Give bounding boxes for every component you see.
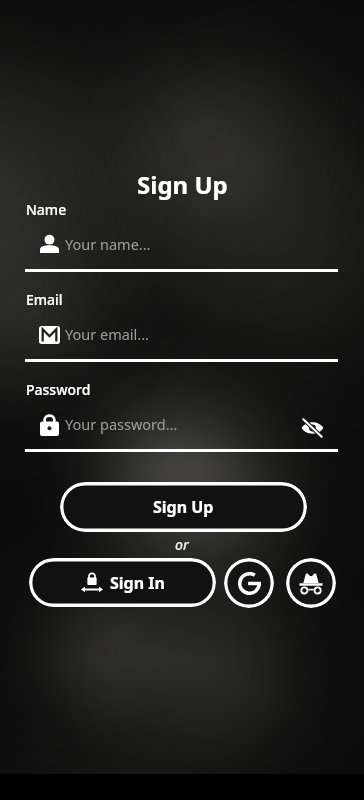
staticText: Sign Up: [137, 168, 228, 201]
button[interactable]: Show password: [292, 408, 332, 448]
staticText: Your password...: [65, 414, 178, 434]
staticText: Name: [26, 200, 67, 219]
staticText: Sign Up: [153, 496, 214, 518]
staticText: or: [175, 535, 189, 554]
staticText: Sign In: [110, 572, 165, 594]
staticText: Email: [26, 290, 63, 309]
button[interactable]: Continue as guest: [286, 558, 336, 608]
button[interactable]: Sign Up: [60, 482, 307, 532]
staticText: Your email...: [65, 324, 149, 344]
staticText: Password: [26, 380, 91, 399]
button[interactable]: Sign in with Google: [224, 558, 274, 608]
button[interactable]: Sign In: [29, 558, 216, 607]
staticText: Your name...: [65, 234, 151, 254]
